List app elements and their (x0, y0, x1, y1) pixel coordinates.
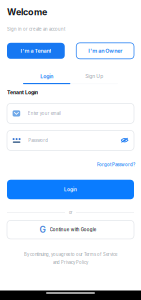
staticText: Welcome (7, 6, 47, 17)
button[interactable]: Show password (121, 138, 128, 143)
staticText: I'm a Tenant (20, 47, 51, 54)
button[interactable]: Login (23, 73, 70, 84)
button[interactable]: G (0, 220, 141, 239)
button[interactable]: I'm a Tenant (7, 43, 65, 59)
staticText: Tenant Login (7, 89, 38, 95)
staticText: Continue with Google (50, 227, 97, 232)
staticText: G (39, 224, 45, 235)
staticText: or (69, 210, 72, 215)
staticText: Sign in or create an account (7, 27, 65, 32)
staticText: I'm an Owner (88, 47, 122, 54)
button[interactable]: I'm an Owner (76, 43, 134, 59)
staticText: Login (40, 73, 53, 79)
button[interactable]: Login (0, 180, 141, 199)
staticText: Login (64, 187, 77, 192)
staticText: and Privacy Policy (53, 260, 88, 265)
button[interactable]: Sign Up (70, 73, 118, 84)
staticText: Sign Up (85, 73, 103, 79)
staticText: Forgot Password? (97, 162, 135, 167)
staticText: Password (28, 138, 48, 143)
button[interactable]: Forgot Password? (0, 162, 141, 167)
staticText: By continuing, you agree to our Terms of… (24, 252, 117, 257)
staticText: Enter your email (28, 111, 61, 116)
